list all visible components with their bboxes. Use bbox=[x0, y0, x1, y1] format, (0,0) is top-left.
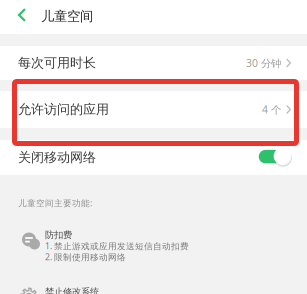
staticText: 关闭移动网络 bbox=[18, 149, 96, 166]
staticText: 儿童空间 bbox=[41, 8, 93, 25]
staticText: 允许访问的应用 bbox=[18, 101, 109, 118]
staticText: 儿童空间主要功能: bbox=[18, 197, 92, 209]
button[interactable]: 允许访问的应用 bbox=[0, 91, 307, 128]
button[interactable]: 关闭移动网络 bbox=[0, 140, 307, 175]
staticText: 30 分钟 bbox=[246, 56, 281, 70]
staticText: 每次可用时长 bbox=[18, 55, 96, 71]
staticText: 2. 限制使用移动网络 bbox=[45, 251, 126, 263]
button[interactable]: 每次可用时长 bbox=[0, 46, 307, 80]
staticText: 4 个 bbox=[262, 102, 281, 117]
staticText: 禁止修改系统 bbox=[45, 286, 99, 294]
staticText: 防扣费 bbox=[45, 229, 72, 241]
button[interactable]: 返回 bbox=[4, 2, 40, 28]
staticText: 1. 禁止游戏或应用发送短信自动扣费 bbox=[45, 240, 189, 252]
